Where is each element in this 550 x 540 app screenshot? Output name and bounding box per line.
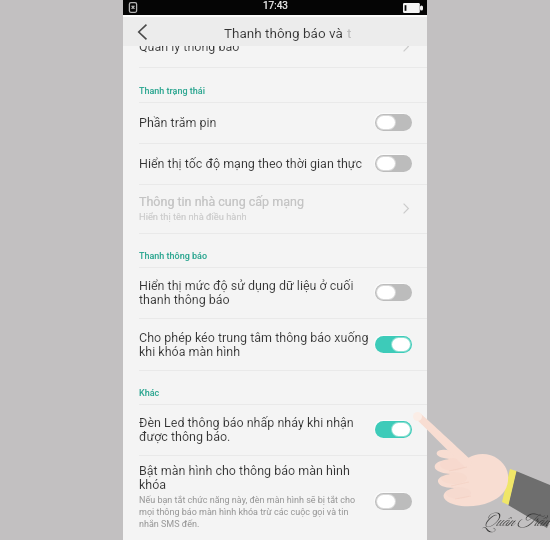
button[interactable]: Đèn Led thông báo nhấp nháy khi nhận đượ… <box>123 404 427 455</box>
staticText: Hiển thị tên nhà điều hành <box>139 211 247 222</box>
button[interactable]: Bật màn hình cho thông báo màn hình khóa <box>123 455 427 540</box>
button[interactable]: Thông tin nhà cung cấp mạng <box>123 184 427 233</box>
staticText: Khác <box>139 388 160 399</box>
button[interactable]: Cho phép kéo trung tâm thông báo xuống k… <box>123 318 427 370</box>
staticText: Cho phép kéo trung tâm thông báo xuống k… <box>139 330 375 359</box>
staticText: t <box>347 25 352 41</box>
staticText: Thanh trạng thái <box>139 86 205 97</box>
button[interactable]: Hiển thị tốc độ mạng theo thời gian thực <box>123 143 427 184</box>
staticText: Thông tin nhà cung cấp mạng <box>139 194 304 209</box>
button[interactable]: Quản lý thông báo <box>123 25 427 67</box>
staticText: Phần trăm pin <box>139 115 217 130</box>
staticText: Thanh thông báo và <box>224 25 347 41</box>
button[interactable]: Switch on <box>375 336 412 353</box>
staticText: Hiển thị tốc độ mạng theo thời gian thực <box>139 156 363 171</box>
staticText: Bật màn hình cho thông báo màn hình khóa <box>139 463 375 492</box>
button[interactable]: Switch off <box>375 493 412 510</box>
button[interactable]: Hiển thị mức độ sử dụng dữ liệu ở cuối t… <box>123 267 427 318</box>
staticText: Hiển thị mức độ sử dụng dữ liệu ở cuối t… <box>139 278 375 307</box>
staticText: Nếu bạn tắt chức năng này, đèn màn hình … <box>139 495 361 529</box>
staticText: Quản lý thông báo <box>139 39 240 54</box>
staticText: Quân Trần <box>483 512 549 533</box>
button[interactable]: Switch on <box>375 421 412 438</box>
button[interactable]: Switch off <box>375 155 412 172</box>
button[interactable]: Back <box>123 17 161 46</box>
staticText: 17:43 <box>263 0 288 12</box>
button[interactable]: Switch off <box>375 284 412 301</box>
staticText: Đèn Led thông báo nhấp nháy khi nhận đượ… <box>139 415 375 444</box>
staticText: Thanh thông báo <box>139 251 208 262</box>
button[interactable]: Phần trăm pin <box>123 102 427 143</box>
button[interactable]: Switch off <box>375 114 412 131</box>
